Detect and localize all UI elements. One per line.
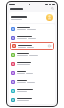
button[interactable] — [9, 77, 55, 86]
button[interactable]: Search — [51, 7, 54, 10]
button[interactable] — [9, 50, 55, 59]
button[interactable] — [9, 12, 55, 23]
button[interactable] — [9, 59, 55, 68]
button[interactable] — [9, 86, 55, 95]
button[interactable] — [9, 95, 55, 104]
button[interactable]: Reorder — [10, 42, 54, 50]
button[interactable] — [9, 33, 55, 42]
button[interactable] — [9, 68, 55, 77]
button[interactable]: Reorder — [48, 44, 52, 48]
button[interactable] — [9, 24, 55, 33]
